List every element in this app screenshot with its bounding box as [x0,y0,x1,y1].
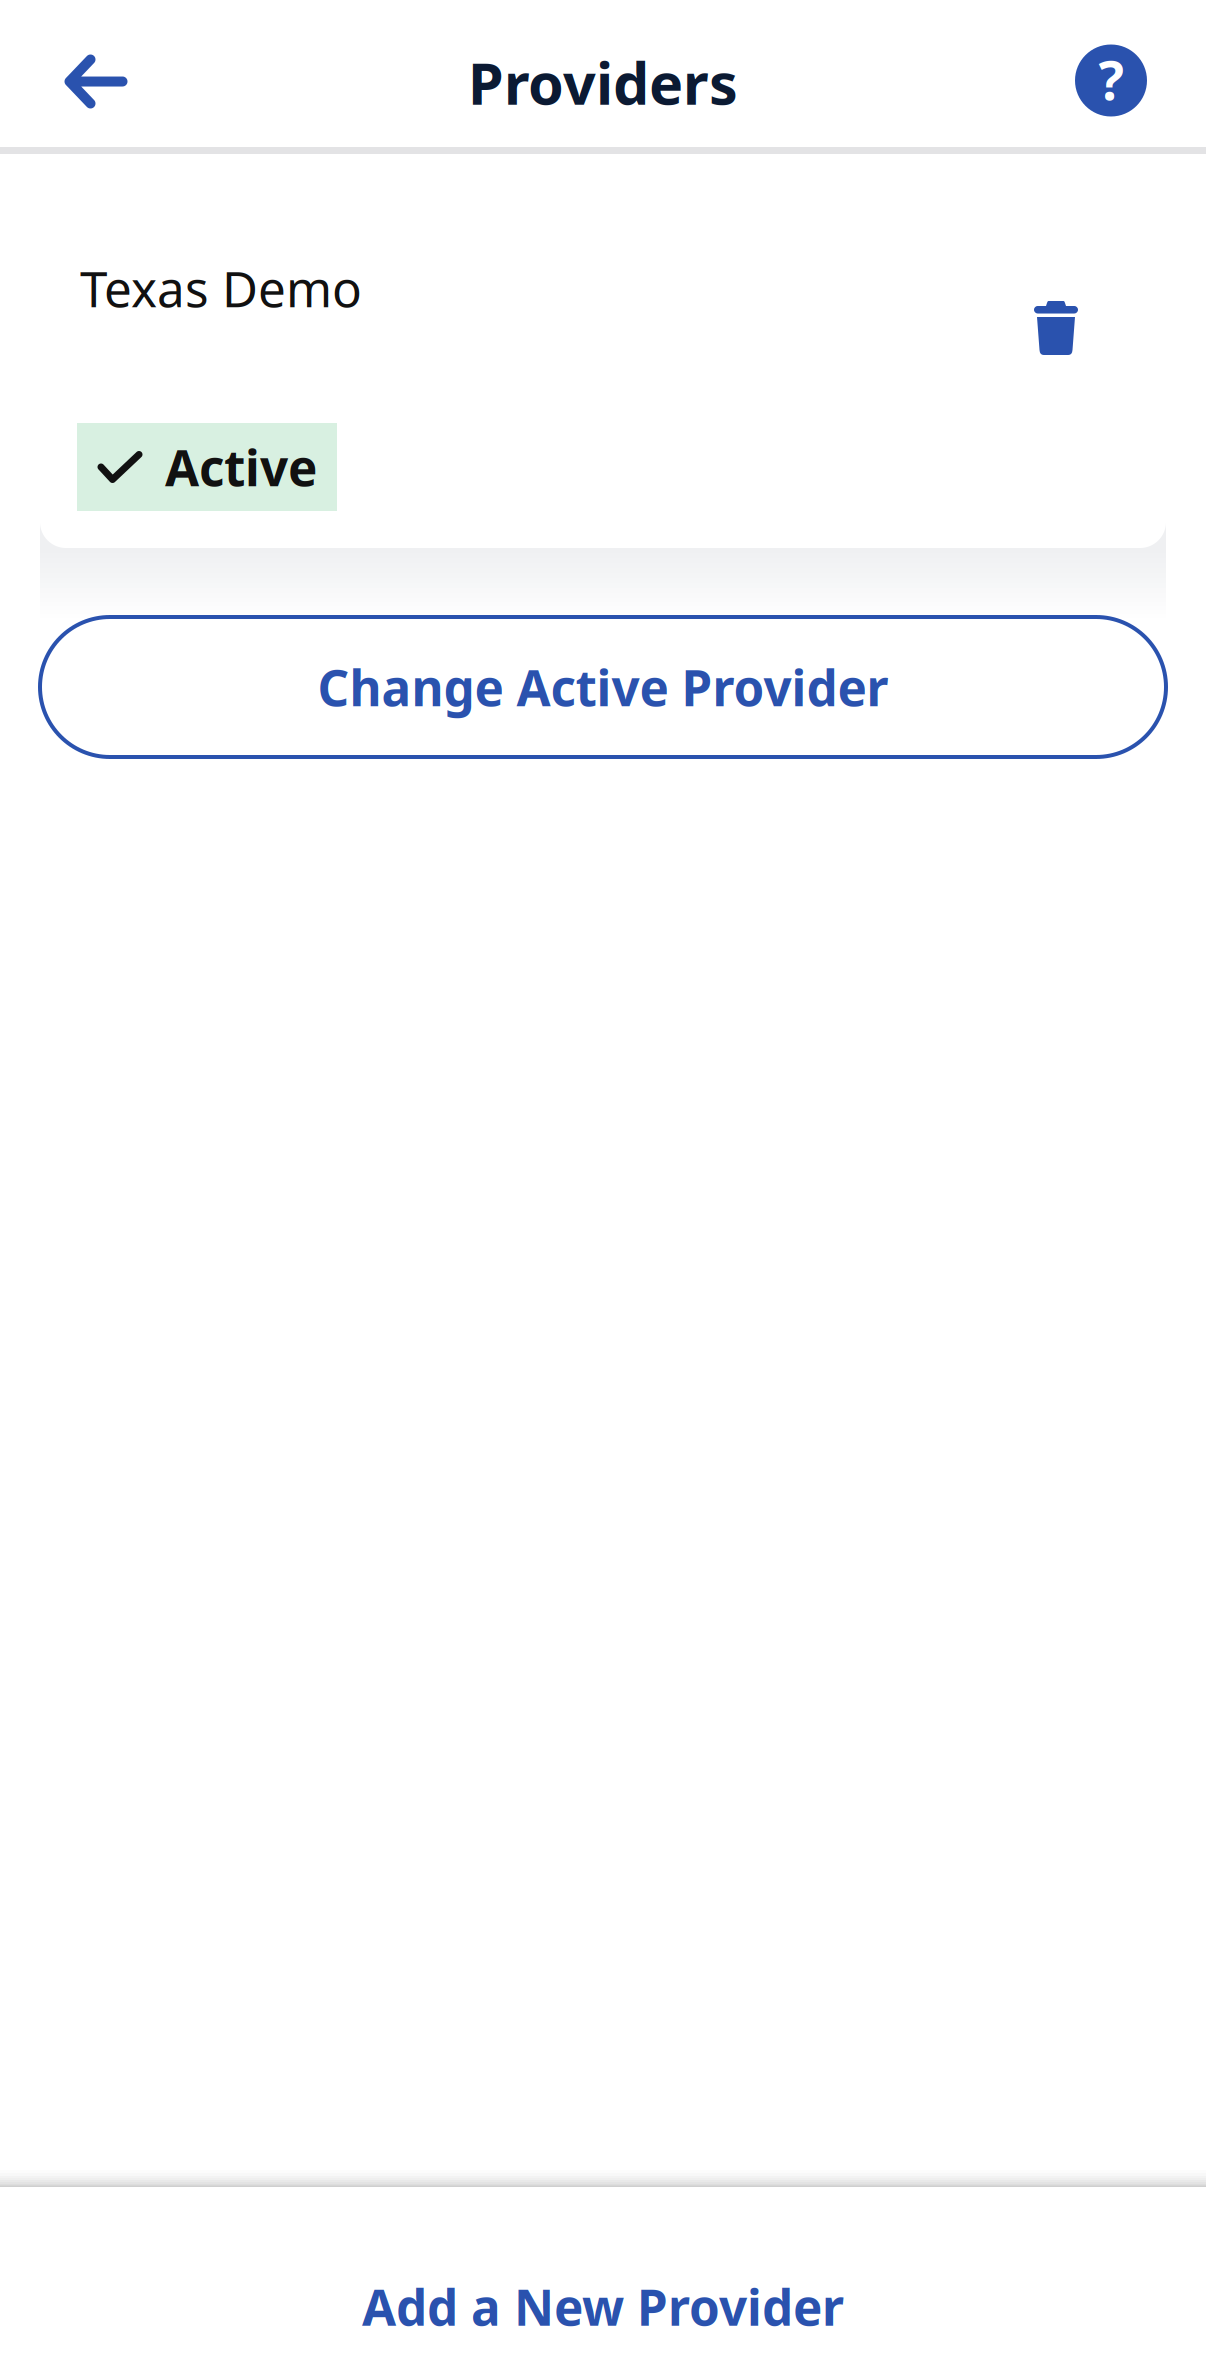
staticText: Texas Demo [80,255,362,321]
staticText: Add a New Provider [362,2274,844,2339]
staticText: Providers [468,44,738,120]
staticText: ? [1098,44,1123,115]
button[interactable]: Add a New Provider [0,2187,1206,2374]
button[interactable]: Change Active Provider [40,617,1166,757]
staticText: Change Active Provider [317,654,888,720]
staticText: Active [165,434,317,500]
button[interactable]: Back [48,26,144,136]
button[interactable]: Delete provider [1014,282,1098,374]
button[interactable]: Help [1057,25,1165,135]
